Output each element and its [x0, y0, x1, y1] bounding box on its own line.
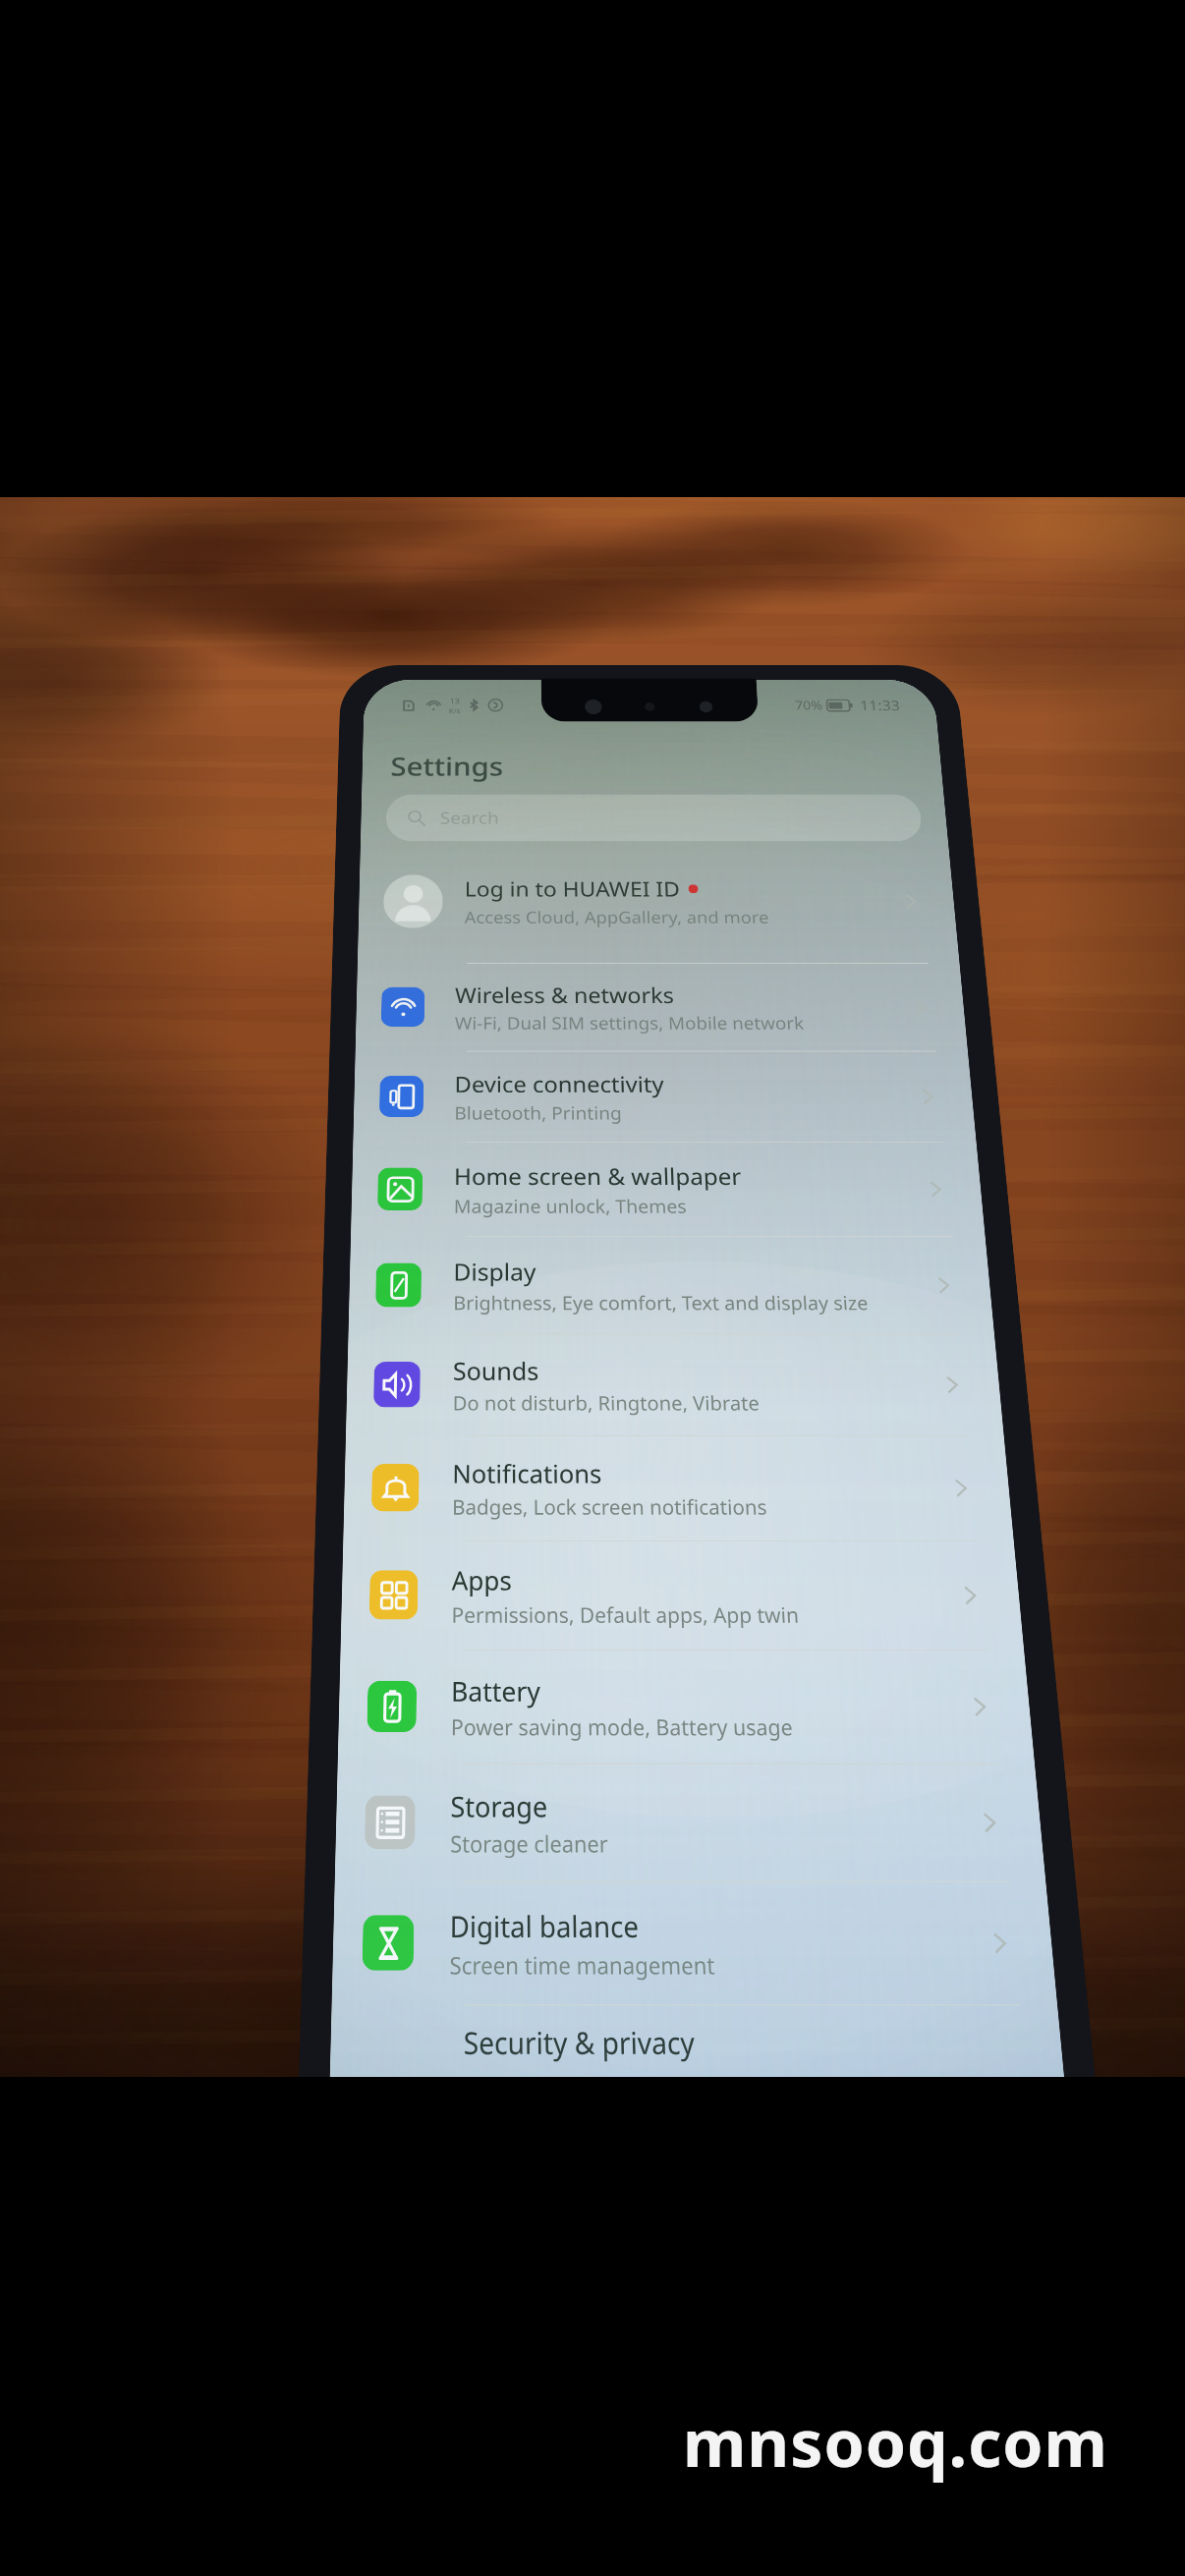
- staticText: mnsooq.com: [683, 2397, 1108, 2486]
- button[interactable]: Security & privacy: [330, 2005, 1064, 2079]
- staticText: Magazine unlock, Themes: [454, 1194, 688, 1219]
- staticText: 70%: [795, 697, 823, 713]
- staticText: Do not disturb, Ringtone, Vibrate: [453, 1390, 761, 1416]
- button[interactable]: Device connectivity: [353, 1052, 976, 1142]
- staticText: Wi-Fi, Dual SIM settings, Mobile network: [455, 1012, 805, 1035]
- staticText: Log in to HUAWEI ID: [465, 875, 681, 902]
- button[interactable]: Battery: [338, 1651, 1035, 1763]
- button[interactable]: Wireless & networks: [355, 964, 968, 1051]
- staticText: K/s: [449, 706, 461, 715]
- staticText: Settings: [390, 749, 504, 783]
- staticText: Storage: [450, 1787, 548, 1825]
- staticText: Battery: [451, 1672, 541, 1709]
- button[interactable]: Sounds: [346, 1335, 1004, 1435]
- staticText: Screen time management: [449, 1949, 716, 1981]
- staticText: Access Cloud, AppGallery, and more: [464, 906, 770, 928]
- staticText: Brightness, Eye comfort, Text and displa…: [453, 1290, 870, 1316]
- staticText: 13: [450, 695, 460, 706]
- staticText: Notifications: [452, 1456, 602, 1490]
- staticText: Home screen & wallpaper: [454, 1160, 743, 1191]
- staticText: Badges, Lock screen notifications: [452, 1493, 768, 1521]
- staticText: Device connectivity: [454, 1069, 665, 1098]
- button[interactable]: Notifications: [343, 1436, 1014, 1540]
- staticText: 11:33: [859, 696, 901, 715]
- staticText: Power saving mode, Battery usage: [451, 1712, 794, 1742]
- staticText: Security & privacy: [463, 2021, 695, 2063]
- staticText: Permissions, Default apps, App twin: [451, 1601, 800, 1629]
- button[interactable]: Apps: [341, 1541, 1024, 1650]
- button[interactable]: Home screen & wallpaper: [351, 1143, 985, 1236]
- button[interactable]: Digital balance: [332, 1882, 1057, 2004]
- staticText: Digital balance: [450, 1906, 639, 1946]
- staticText: Bluetooth, Printing: [454, 1101, 623, 1125]
- staticText: Apps: [452, 1562, 512, 1598]
- staticText: Sounds: [453, 1354, 540, 1387]
- staticText: Storage cleaner: [450, 1828, 609, 1859]
- button[interactable]: Display: [348, 1237, 994, 1334]
- button[interactable]: Storage: [335, 1764, 1046, 1881]
- button[interactable]: Log in to HUAWEI ID: [358, 841, 959, 963]
- staticText: Wireless & networks: [455, 980, 675, 1009]
- button[interactable]: Search: [386, 794, 923, 841]
- staticText: Search: [440, 807, 499, 829]
- staticText: Display: [453, 1255, 537, 1287]
